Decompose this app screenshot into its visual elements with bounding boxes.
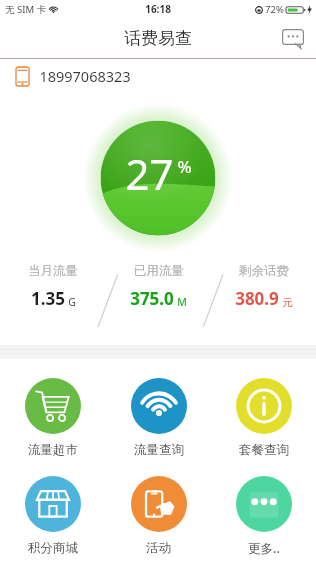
button[interactable]: Messages bbox=[278, 24, 308, 54]
staticText: 27 bbox=[125, 145, 174, 202]
staticText: 1.35 bbox=[31, 287, 65, 310]
staticText: 16:18 bbox=[145, 2, 171, 16]
button[interactable]: 套餐查询 bbox=[211, 378, 316, 458]
staticText: 72% bbox=[265, 3, 284, 16]
staticText: 更多.. bbox=[248, 540, 280, 557]
staticText: 380.9 bbox=[235, 287, 279, 310]
button[interactable]: 当月流量 bbox=[0, 263, 106, 310]
button[interactable]: 已用流量 bbox=[106, 263, 211, 310]
staticText: 无 SIM 卡 bbox=[5, 3, 46, 16]
staticText: 375.0 bbox=[130, 287, 174, 310]
button[interactable]: 更多.. bbox=[211, 476, 316, 557]
button[interactable]: 流量超市 bbox=[0, 378, 106, 458]
button[interactable]: 活动 bbox=[106, 476, 211, 556]
button[interactable]: 流量查询 bbox=[106, 378, 211, 458]
staticText: 活动 bbox=[146, 540, 171, 556]
button[interactable]: 剩余话费 bbox=[211, 263, 316, 310]
staticText: G bbox=[68, 295, 76, 309]
staticText: 元 bbox=[282, 296, 293, 309]
staticText: 套餐查询 bbox=[239, 442, 289, 458]
staticText: 当月流量 bbox=[28, 263, 78, 279]
staticText: 积分商城 bbox=[28, 540, 78, 556]
staticText: 话费易查 bbox=[124, 28, 192, 49]
staticText: 已用流量 bbox=[134, 263, 184, 279]
staticText: M bbox=[177, 295, 187, 309]
staticText: 流量超市 bbox=[28, 442, 78, 458]
button[interactable]: 积分商城 bbox=[0, 476, 106, 556]
staticText: % bbox=[177, 155, 192, 178]
staticText: 18997068323 bbox=[39, 66, 131, 86]
staticText: 流量查询 bbox=[134, 442, 184, 458]
staticText: 剩余话费 bbox=[239, 263, 289, 279]
